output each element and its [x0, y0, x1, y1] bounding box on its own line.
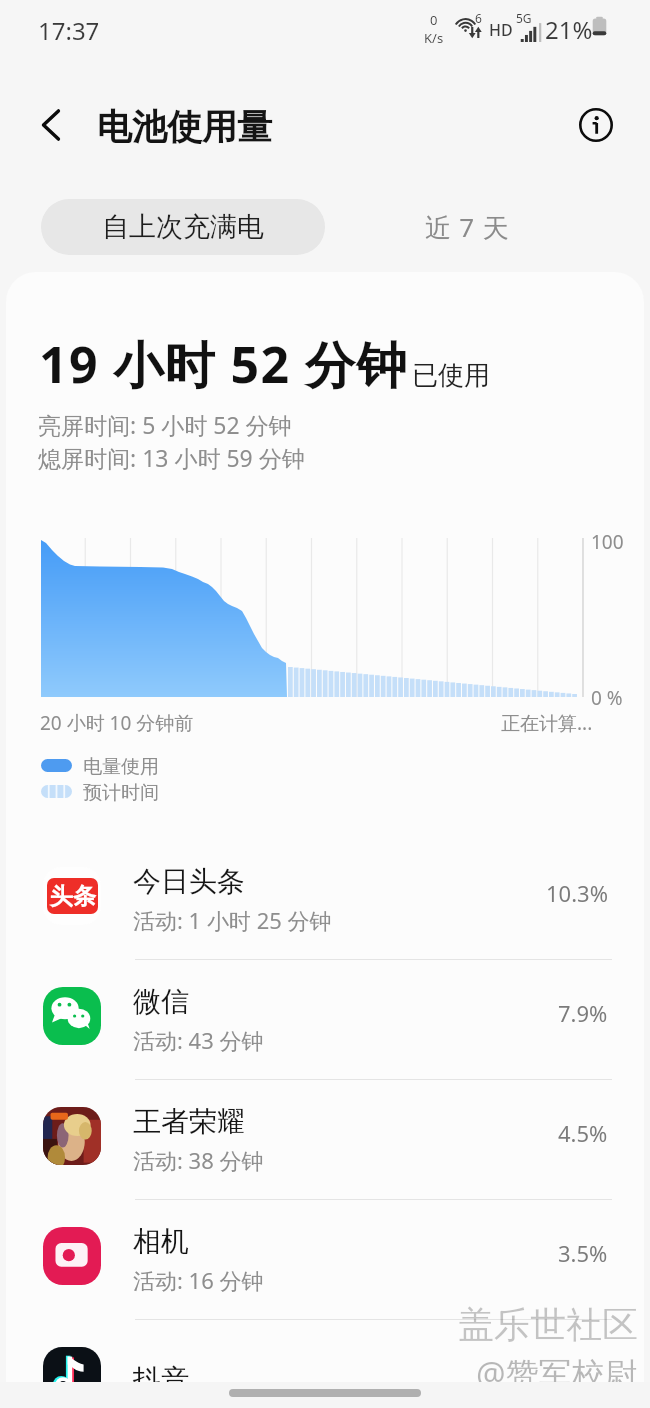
staticText: 6: [475, 10, 482, 26]
button[interactable]: Information: [568, 97, 624, 153]
staticText: 王者荣耀: [133, 1104, 245, 1139]
staticText: 10.3%: [546, 878, 608, 908]
staticText: 20 小时 10 分钟前: [40, 710, 194, 736]
button[interactable]: 微信: [0, 960, 650, 1079]
staticText: HD: [489, 19, 513, 41]
staticText: 微信: [133, 984, 189, 1019]
staticText: 电池使用量: [97, 105, 272, 149]
staticText: 0 %: [591, 685, 623, 711]
staticText: 自上次充满电: [102, 210, 264, 244]
button[interactable]: 头条: [0, 840, 650, 959]
staticText: 已使用: [412, 359, 490, 392]
staticText: 5G: [516, 10, 532, 26]
button[interactable]: 王者荣耀: [0, 1080, 650, 1199]
staticText: 亮屏时间: 5 小时 52 分钟: [38, 409, 292, 440]
staticText: 活动: 38 分钟: [133, 1145, 264, 1175]
button[interactable]: 近 7 天: [353, 199, 581, 255]
staticText: 盖乐世社区: [458, 1302, 638, 1347]
staticText: 活动: 16 分钟: [133, 1265, 264, 1295]
staticText: 21%: [545, 13, 593, 46]
staticText: 19 小时 52 分钟: [39, 330, 408, 398]
staticText: 0: [430, 11, 438, 29]
button[interactable]: 自上次充满电: [41, 199, 325, 255]
staticText: K/s: [424, 29, 444, 47]
staticText: 熄屏时间: 13 小时 59 分钟: [38, 442, 305, 473]
staticText: 4.5%: [558, 1118, 608, 1148]
staticText: 电量使用: [83, 755, 159, 779]
staticText: 正在计算...: [501, 710, 593, 736]
staticText: 抖音: [133, 1362, 189, 1397]
staticText: 17:37: [38, 14, 100, 47]
staticText: 100: [591, 529, 624, 555]
staticText: 7.9%: [558, 998, 608, 1028]
staticText: 3.5%: [558, 1238, 608, 1268]
staticText: 今日头条: [133, 864, 245, 899]
staticText: 活动: 1 小时 25 分钟: [133, 905, 332, 935]
button[interactable]: 抖音: [0, 1320, 650, 1408]
staticText: 相机: [133, 1224, 189, 1259]
staticText: 活动: 43 分钟: [133, 1025, 264, 1055]
staticText: 预计时间: [83, 781, 159, 805]
button[interactable]: Back: [21, 93, 85, 157]
staticText: 头条: [50, 882, 96, 911]
staticText: 近 7 天: [425, 209, 510, 245]
staticText: @赞军校尉: [476, 1351, 638, 1396]
button[interactable]: 相机: [0, 1200, 650, 1319]
